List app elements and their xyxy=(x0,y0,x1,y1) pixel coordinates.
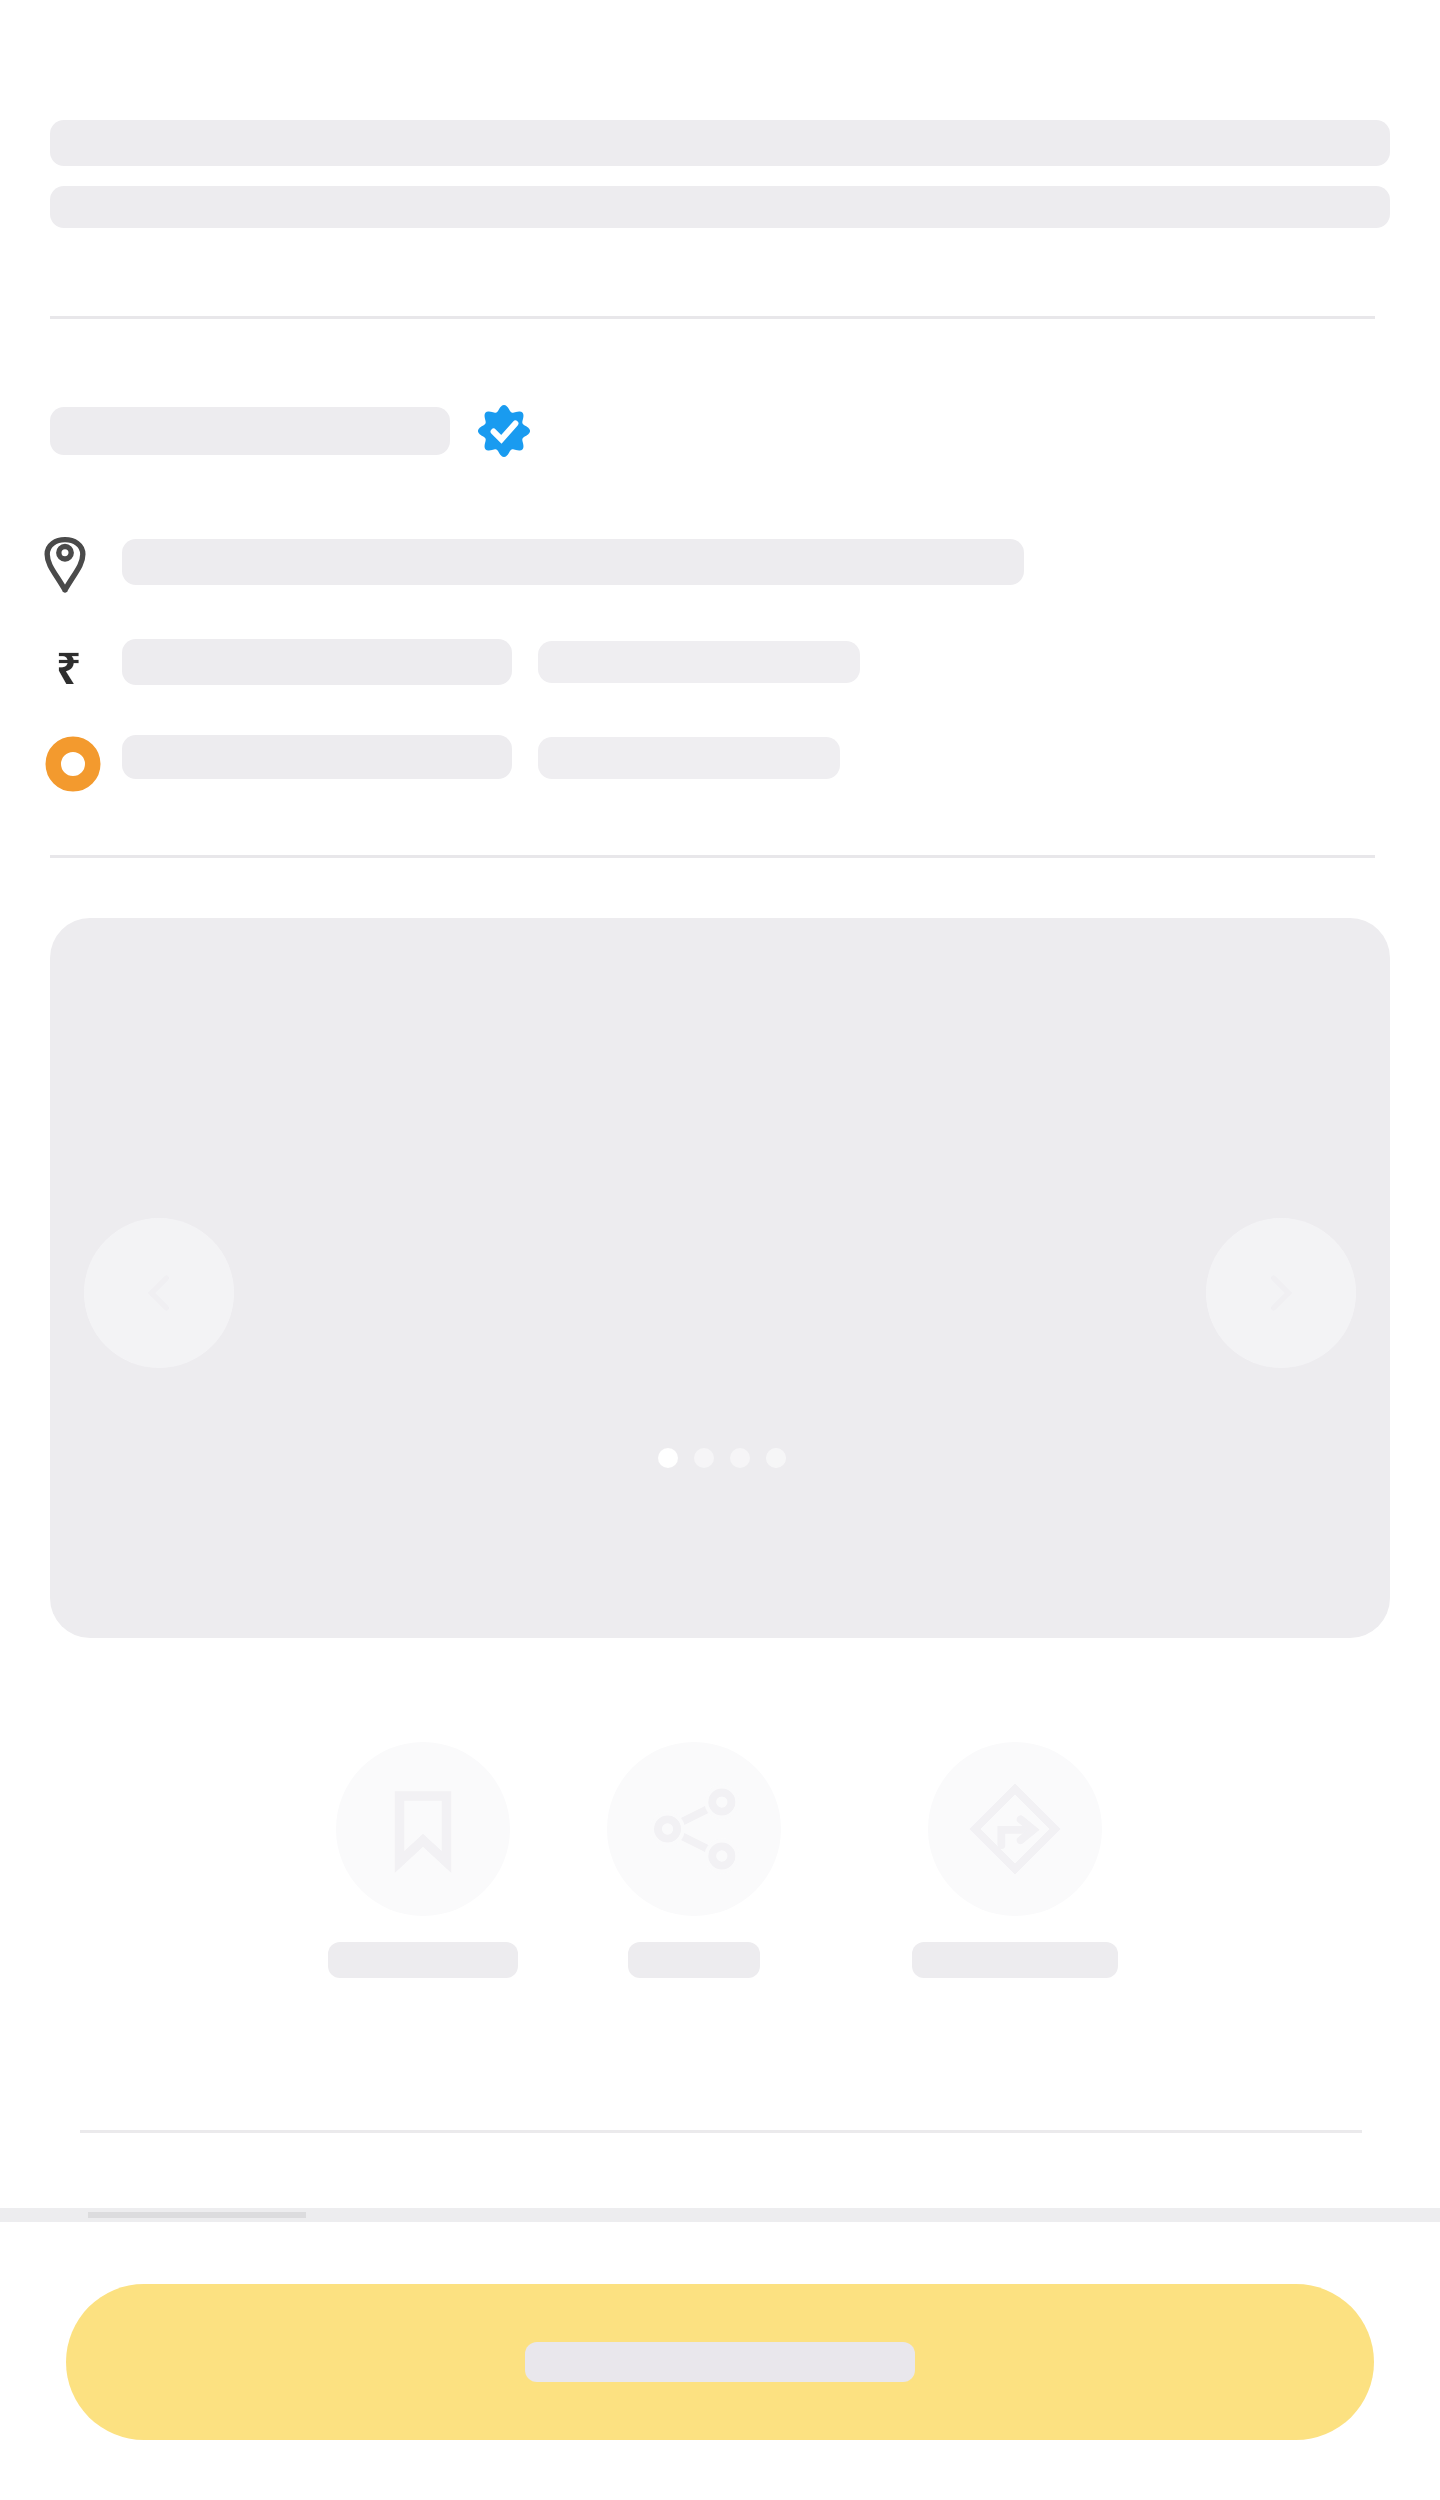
button[interactable]: Save xyxy=(336,1742,510,1916)
staticText: ₹ xyxy=(56,638,82,684)
button[interactable]: Directions xyxy=(928,1742,1102,1916)
button[interactable]: Share xyxy=(607,1742,781,1916)
other: Location xyxy=(38,536,92,590)
button[interactable]: Verified xyxy=(478,405,530,457)
button[interactable] xyxy=(66,2284,1374,2440)
